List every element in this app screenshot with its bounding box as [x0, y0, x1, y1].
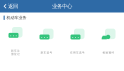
staticText: 业务中心 [52, 3, 72, 10]
staticText: 在用车选号 [70, 51, 85, 54]
staticText: 检验预约 [102, 51, 114, 54]
staticText: 返回 [8, 3, 18, 10]
button[interactable]: 返回 [0, 1, 18, 12]
button[interactable]: 在用车选号 [62, 29, 93, 54]
button[interactable]: 新车选号 [31, 29, 62, 54]
staticText: 机动车业务 [6, 15, 26, 20]
staticText: 新车注册登记 [11, 49, 20, 56]
staticText: 新车选号 [40, 51, 52, 54]
button[interactable]: 检验预约 [93, 29, 124, 54]
button[interactable]: 新车注册登记 [0, 27, 31, 56]
